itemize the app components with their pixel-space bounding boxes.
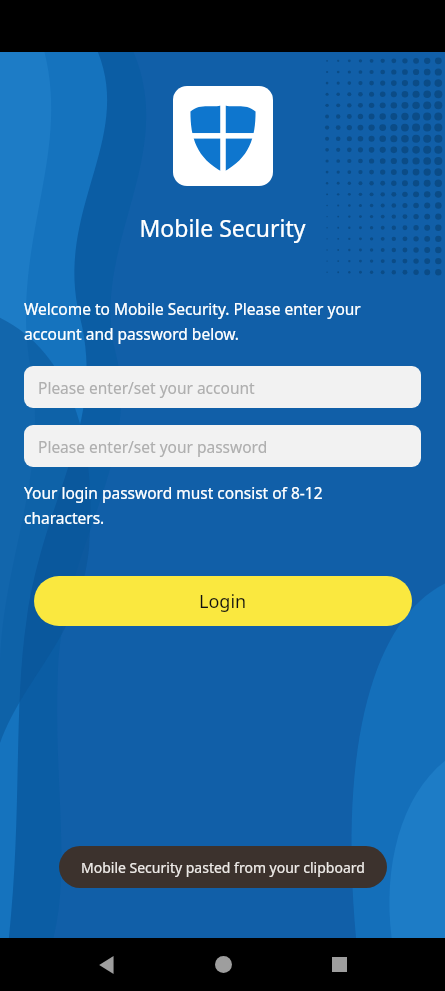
staticText: Please enter/set your password <box>38 436 268 457</box>
button[interactable]: Please enter/set your password <box>24 425 421 467</box>
button[interactable]: Home <box>193 938 253 991</box>
staticText: Login <box>199 589 247 614</box>
button[interactable]: Back <box>76 938 136 991</box>
staticText: Please enter/set your account <box>38 377 255 398</box>
staticText: Your login password must consist of 8-12… <box>24 482 355 528</box>
button[interactable]: Recent apps <box>309 938 369 991</box>
staticText: Mobile Security pasted from your clipboa… <box>81 858 365 877</box>
button[interactable]: Login <box>34 576 412 626</box>
staticText: Mobile Security <box>0 212 445 243</box>
staticText: Welcome to Mobile Security. Please enter… <box>24 298 393 344</box>
button[interactable]: Please enter/set your account <box>24 366 421 408</box>
